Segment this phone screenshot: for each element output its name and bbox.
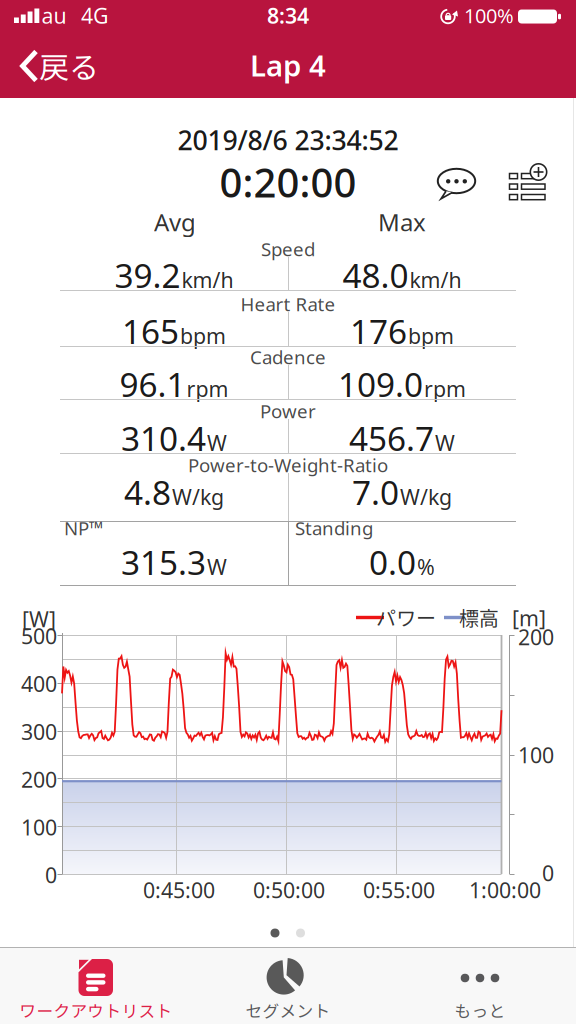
button[interactable] — [0, 0, 576, 1024]
button[interactable]: 戻る — [0, 0, 576, 1024]
staticText: 315.3 — [121, 540, 206, 584]
staticText: 0.0 — [369, 540, 416, 584]
button[interactable] — [0, 0, 576, 1024]
staticText: 310.4 — [121, 416, 206, 460]
button[interactable]: ワークアウトリスト — [0, 0, 576, 1024]
staticText: パワー — [376, 602, 436, 631]
button[interactable]: もっと — [0, 0, 576, 1024]
staticText: Max — [378, 206, 426, 238]
staticText: 100 — [21, 813, 57, 841]
staticText: % — [417, 552, 435, 581]
staticText: Lap 4 — [250, 45, 326, 84]
staticText: W — [207, 428, 227, 457]
staticText: 0:45:00 — [143, 876, 215, 904]
staticText: [m] — [512, 604, 546, 632]
staticText: 0:55:00 — [363, 876, 435, 904]
staticText: W — [207, 552, 227, 581]
staticText: 1:00:00 — [469, 876, 541, 904]
staticText: 200 — [21, 765, 57, 793]
staticText: 0:50:00 — [253, 876, 325, 904]
staticText: 0 — [45, 861, 57, 889]
staticText: Power — [260, 399, 316, 423]
staticText: bpm — [180, 321, 226, 350]
staticText: 100% — [464, 2, 514, 29]
staticText: 48.0 — [342, 253, 408, 297]
staticText: ワークアウトリスト — [19, 998, 172, 1022]
staticText: NP™ — [64, 516, 103, 540]
staticText: 0 — [542, 859, 554, 887]
staticText: au — [41, 1, 66, 30]
staticText: 2019/8/6 23:34:52 — [177, 122, 398, 158]
staticText: 39.2 — [114, 253, 180, 297]
staticText: [W] — [22, 605, 56, 633]
staticText: 戻る — [39, 44, 99, 87]
staticText: 400 — [21, 670, 57, 698]
staticText: セグメント — [245, 998, 330, 1022]
staticText: km/h — [409, 265, 461, 294]
staticText: rpm — [186, 374, 228, 403]
button[interactable]: セグメント — [0, 0, 576, 1024]
staticText: 200 — [518, 623, 554, 651]
staticText: Power-to-Weight-Ratio — [188, 453, 388, 477]
staticText: W — [435, 428, 455, 457]
staticText: km/h — [181, 265, 233, 294]
staticText: 8:34 — [267, 1, 309, 30]
staticText: Heart Rate — [240, 292, 335, 316]
staticText: 500 — [21, 622, 57, 650]
staticText: W/kg — [400, 482, 452, 511]
staticText: 300 — [21, 717, 57, 746]
staticText: 4.8 — [124, 470, 171, 514]
staticText: 4G — [81, 1, 109, 30]
staticText: Avg — [154, 206, 196, 238]
staticText: 165 — [122, 309, 179, 353]
staticText: 0:20:00 — [219, 155, 356, 208]
staticText: 96.1 — [119, 362, 185, 406]
staticText: もっと — [454, 998, 505, 1022]
staticText: bpm — [408, 321, 454, 350]
staticText: 標高 — [459, 602, 499, 631]
staticText: 456.7 — [349, 416, 434, 460]
staticText: 100 — [518, 741, 554, 769]
staticText: 176 — [350, 309, 407, 353]
staticText: W/kg — [172, 482, 224, 511]
button[interactable] — [0, 0, 576, 1024]
staticText: 7.0 — [352, 470, 399, 514]
staticText: Cadence — [250, 345, 326, 369]
staticText: Speed — [261, 237, 315, 261]
staticText: 109.0 — [338, 362, 423, 406]
staticText: Standing — [295, 516, 373, 540]
staticText: rpm — [424, 374, 466, 403]
